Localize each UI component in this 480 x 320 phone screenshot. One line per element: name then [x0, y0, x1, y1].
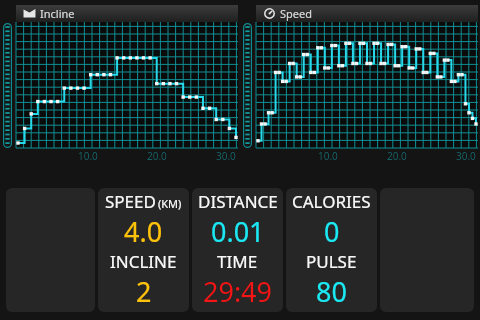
staticText: 0.01 [211, 213, 265, 250]
button[interactable]: SPEED [98, 188, 189, 312]
staticText: 20.0 [387, 149, 407, 163]
staticText: PULSE [306, 250, 357, 273]
other: Speed [263, 8, 276, 19]
staticText: (KM) [158, 196, 182, 211]
button[interactable]: Incline [0, 0, 240, 172]
staticText: SPEED [105, 190, 156, 213]
staticText: Speed [280, 6, 312, 21]
staticText: 80 [316, 273, 347, 310]
button[interactable]: Speed [240, 0, 480, 172]
staticText: 0 [324, 213, 340, 250]
staticText: DISTANCE [198, 190, 278, 213]
staticText: 10.0 [78, 149, 98, 163]
button[interactable]: DISTANCE [192, 188, 283, 312]
staticText: 30.0 [456, 149, 476, 163]
other: Incline [23, 8, 36, 19]
staticText: 20.0 [147, 149, 167, 163]
staticText: INCLINE [110, 250, 177, 273]
staticText: TIME [217, 250, 258, 273]
staticText: CALORIES [292, 190, 371, 213]
staticText: 4.0 [124, 213, 163, 250]
staticText: 30.0 [216, 149, 236, 163]
staticText: Incline [40, 6, 75, 21]
button[interactable]: CALORIES [286, 188, 377, 312]
staticText: 2 [136, 273, 152, 310]
staticText: 29:49 [203, 273, 273, 310]
staticText: 10.0 [318, 149, 338, 163]
